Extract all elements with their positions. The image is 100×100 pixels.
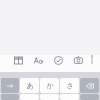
button[interactable]: Key xyxy=(1,94,19,100)
button[interactable]: Checklist xyxy=(53,55,64,66)
button[interactable]: Key xyxy=(40,94,59,100)
staticText: か xyxy=(46,81,54,90)
button[interactable]: Camera xyxy=(73,55,84,66)
button[interactable]: Next candidate xyxy=(1,78,19,93)
button[interactable]: Text style xyxy=(33,55,44,66)
button[interactable]: あ xyxy=(20,78,39,93)
staticText: さ xyxy=(66,81,74,90)
button[interactable]: Key xyxy=(20,94,39,100)
button[interactable]: Key xyxy=(80,94,99,100)
staticText: あ xyxy=(26,81,34,90)
button[interactable]: さ xyxy=(60,78,79,93)
button[interactable]: Backspace xyxy=(80,78,99,93)
button[interactable]: Format table xyxy=(13,55,24,66)
button[interactable]: Key xyxy=(60,94,79,100)
button[interactable]: か xyxy=(40,78,59,93)
